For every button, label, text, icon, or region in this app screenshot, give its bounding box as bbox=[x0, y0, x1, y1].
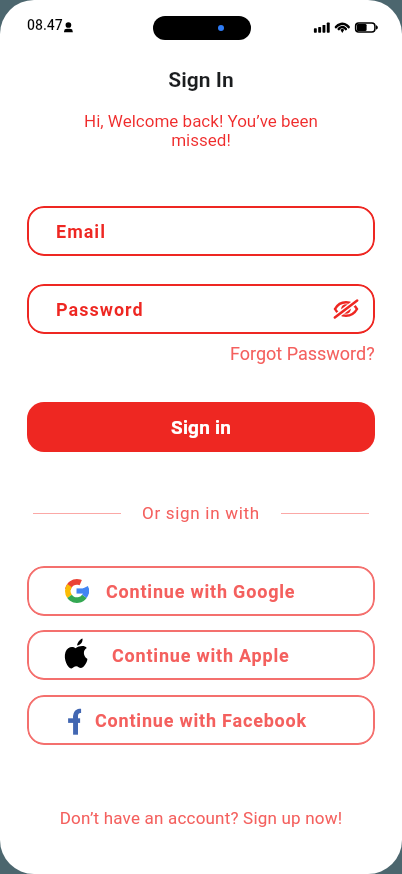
staticText: Or sign in with bbox=[142, 503, 260, 523]
button[interactable]: Sign in bbox=[27, 402, 375, 452]
button[interactable]: Email bbox=[27, 206, 375, 256]
staticText: Sign In bbox=[0, 68, 402, 93]
staticText: Continue with Apple bbox=[112, 645, 290, 666]
staticText: Hi, Welcome back! You’ve been missed! bbox=[0, 111, 402, 150]
button[interactable]: Don’t have an account? Sign up now! bbox=[0, 808, 402, 828]
staticText: 08.47 bbox=[27, 17, 63, 33]
button[interactable]: Continue with Apple bbox=[27, 630, 375, 680]
staticText: Continue with Facebook bbox=[95, 710, 307, 731]
button[interactable]: Show password bbox=[333, 296, 359, 322]
staticText: Email bbox=[56, 221, 106, 242]
button[interactable]: Forgot Password? bbox=[230, 343, 375, 364]
staticText: Continue with Google bbox=[106, 581, 296, 602]
staticText: Sign in bbox=[171, 416, 232, 438]
staticText: Password bbox=[56, 299, 144, 320]
button[interactable]: Password bbox=[27, 284, 375, 334]
button[interactable]: Continue with Facebook bbox=[27, 695, 375, 745]
button[interactable]: Continue with Google bbox=[27, 566, 375, 616]
